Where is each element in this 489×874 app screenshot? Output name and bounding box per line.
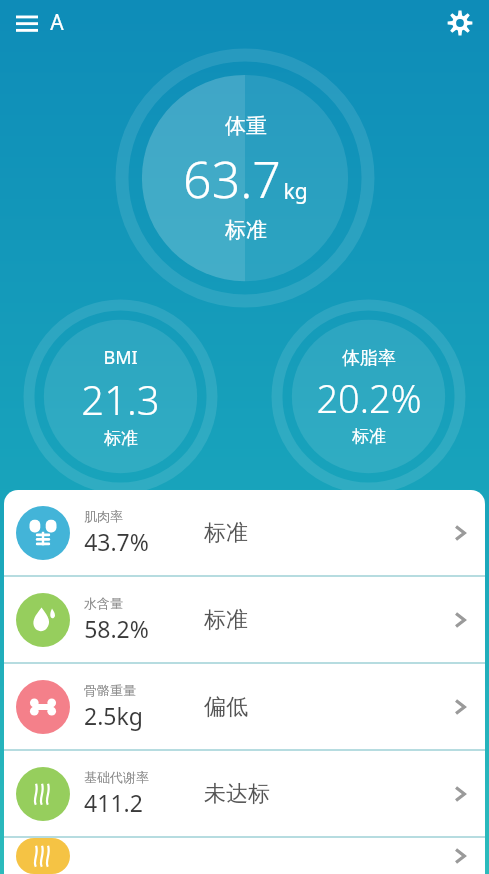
- staticText: 未达标: [204, 780, 270, 808]
- staticText: 基础代谢率: [84, 769, 149, 785]
- staticText: 标准: [204, 606, 248, 634]
- staticText: 21.3: [81, 372, 160, 426]
- staticText: kg: [283, 177, 308, 206]
- staticText: 水含量: [84, 595, 123, 611]
- staticText: A: [50, 8, 64, 37]
- staticText: 标准: [204, 519, 248, 547]
- staticText: 标准: [104, 428, 138, 449]
- button[interactable]: Menu: [10, 2, 70, 43]
- staticText: 43.7%: [84, 526, 149, 557]
- staticText: 411.2: [84, 787, 143, 818]
- staticText: 63.7: [183, 145, 281, 213]
- button[interactable]: 肌肉率: [4, 490, 485, 575]
- staticText: 58.2%: [84, 613, 149, 644]
- button[interactable]: 体脂率: [275, 303, 462, 490]
- staticText: 标准: [225, 217, 267, 243]
- staticText: 肌肉率: [84, 508, 123, 524]
- staticText: 偏低: [204, 693, 248, 721]
- button[interactable]: 体重: [120, 53, 370, 303]
- button[interactable]: Settings: [443, 6, 477, 40]
- staticText: 体重: [225, 113, 267, 139]
- staticText: 2.5kg: [84, 700, 143, 731]
- staticText: 体脂率: [342, 347, 396, 370]
- staticText: 20.2%: [316, 372, 422, 424]
- staticText: 骨骼重量: [84, 682, 136, 698]
- staticText: BMI: [103, 345, 138, 370]
- button[interactable]: BMI: [27, 303, 214, 490]
- button[interactable]: 基础代谢率: [4, 751, 485, 836]
- button[interactable]: 水含量: [4, 577, 485, 662]
- staticText: 标准: [352, 426, 386, 447]
- button[interactable]: [4, 838, 485, 874]
- button[interactable]: 骨骼重量: [4, 664, 485, 749]
